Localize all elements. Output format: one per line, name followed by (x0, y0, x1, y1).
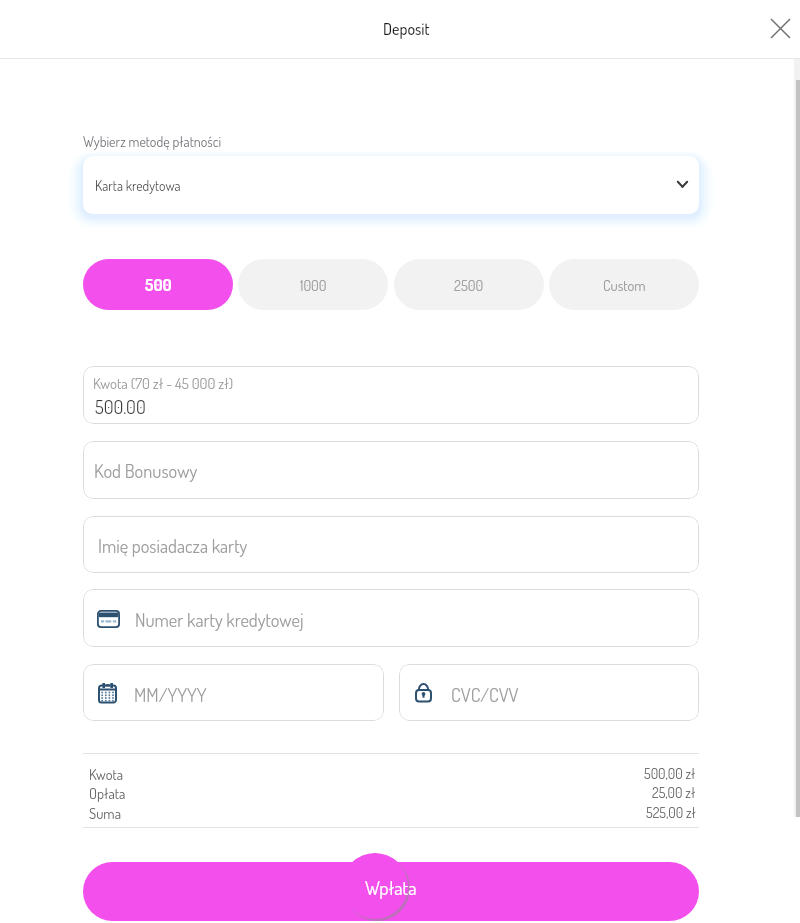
staticText: Deposit (383, 19, 430, 39)
staticText: Wpłata (365, 875, 417, 899)
staticText: 1000 (300, 276, 327, 294)
button[interactable]: 1000 (238, 259, 388, 310)
staticText: Kwota (70 zł - 45 000 zł) (93, 374, 234, 393)
staticText: 2500 (454, 276, 484, 294)
staticText: Custom (603, 276, 646, 294)
staticText: Kod Bonusowy (94, 459, 198, 482)
button[interactable]: Imię posiadacza karty (83, 516, 699, 573)
button[interactable]: Custom (549, 259, 699, 310)
staticText: Numer karty kredytowej (135, 608, 304, 631)
staticText: Wybierz metodę płatności (83, 133, 222, 151)
staticText: 500.00 (95, 395, 146, 418)
button[interactable]: Kod Bonusowy (83, 441, 699, 499)
staticText: Kwota (89, 765, 124, 783)
staticText: Karta kredytowa (95, 177, 181, 194)
button[interactable]: CVC/CVV (399, 664, 699, 721)
button[interactable]: Numer karty kredytowej (83, 589, 699, 647)
staticText: Imię posiadacza karty (98, 534, 248, 557)
button[interactable]: Karta kredytowa (83, 156, 699, 214)
button[interactable]: 500 (83, 259, 233, 310)
staticText: CVC/CVV (451, 683, 519, 706)
staticText: 500,00 zł (644, 765, 696, 783)
button[interactable]: 2500 (394, 259, 544, 310)
staticText: MM/YYYY (134, 683, 207, 706)
button[interactable]: Close (760, 8, 800, 48)
staticText: 525,00 zł (646, 804, 696, 822)
button[interactable] (83, 862, 699, 921)
staticText: 500 (145, 274, 172, 295)
staticText: 25,00 zł (652, 784, 696, 802)
staticText: Opłata (89, 784, 126, 802)
button[interactable] (83, 366, 699, 424)
button[interactable]: MM/YYYY (83, 664, 384, 721)
staticText: Suma (89, 804, 122, 822)
